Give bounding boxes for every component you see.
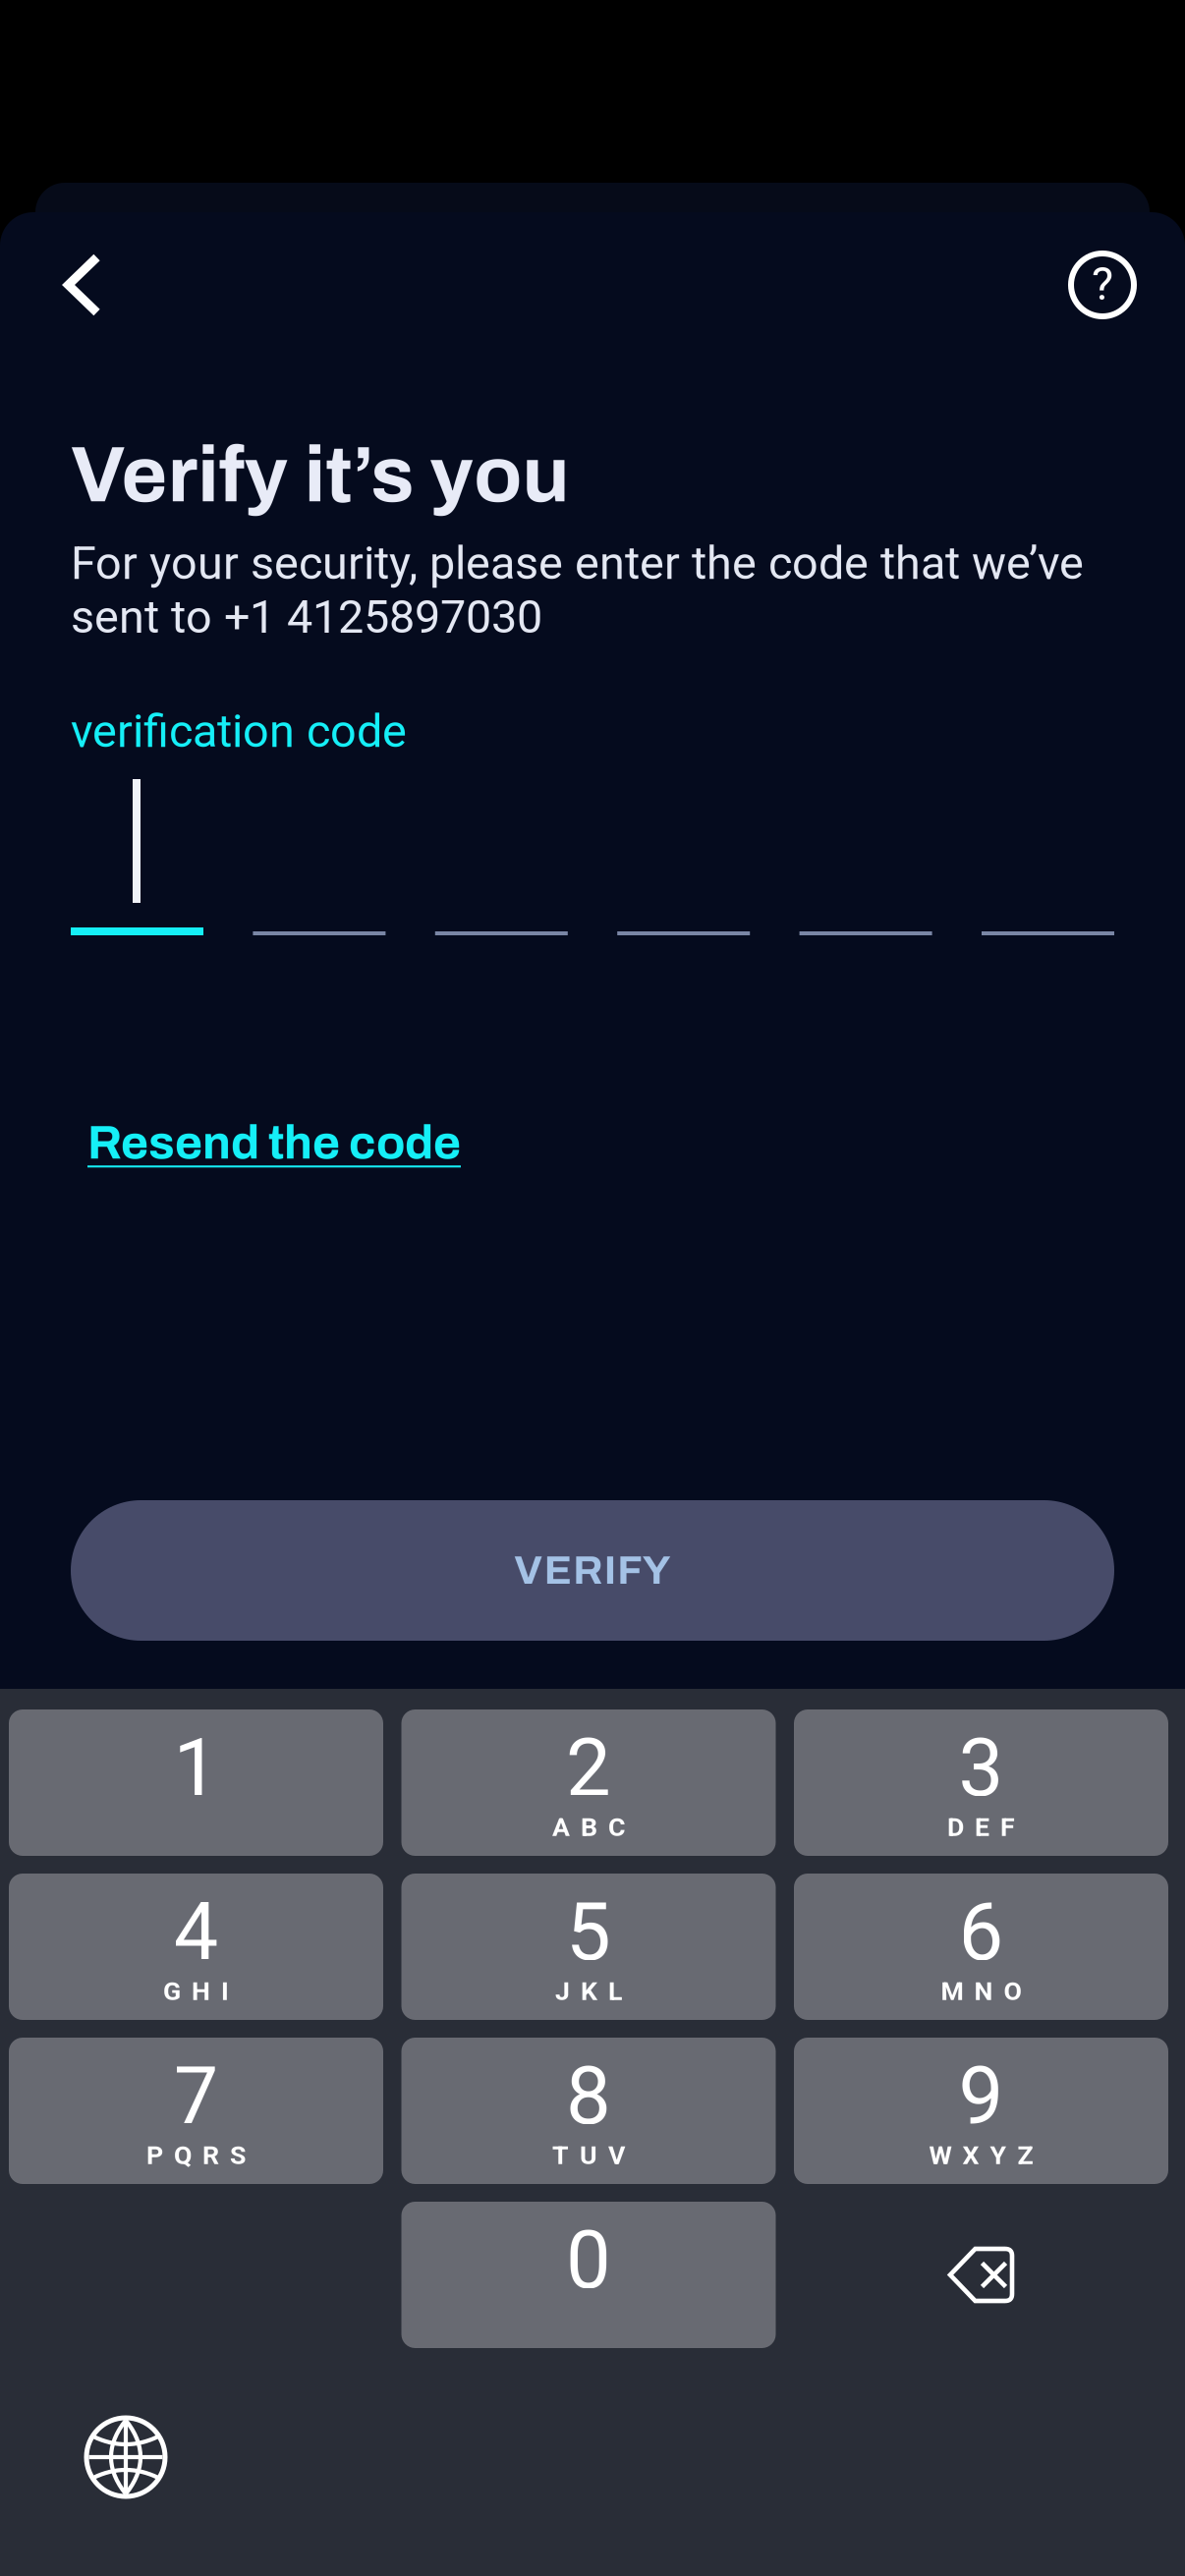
button[interactable]: 5 — [401, 1874, 776, 2020]
staticText: 2 — [566, 1721, 611, 1815]
staticText: 4 — [173, 1885, 219, 1979]
staticText: 7 — [173, 2049, 219, 2143]
staticText: PQRS — [146, 2140, 246, 2171]
button[interactable]: 0 — [401, 2202, 776, 2348]
button[interactable]: Next keyboard — [72, 2403, 180, 2511]
button[interactable]: 7 — [9, 2038, 383, 2184]
button[interactable]: 8 — [401, 2038, 776, 2184]
staticText: ? — [1092, 257, 1113, 311]
staticText: DEF — [947, 1812, 1015, 1842]
staticText: 1 — [173, 1721, 219, 1815]
button[interactable]: 9 — [794, 2038, 1168, 2184]
button[interactable]: 6 — [794, 1874, 1168, 2020]
staticText: 9 — [959, 2049, 1004, 2143]
button[interactable]: Back — [28, 231, 137, 339]
button[interactable]: VERIFY — [71, 1500, 1114, 1641]
staticText: Verify it’s you — [71, 432, 570, 518]
button[interactable]: 3 — [794, 1709, 1168, 1856]
staticText: JKL — [555, 1976, 622, 2006]
staticText: ABC — [552, 1812, 625, 1842]
staticText: Resend the code — [87, 1117, 461, 1168]
button[interactable]: Delete — [794, 2202, 1168, 2348]
staticText: TUV — [552, 2140, 625, 2171]
staticText: GHI — [163, 1976, 229, 2006]
button[interactable]: 2 — [401, 1709, 776, 1856]
staticText: WXYZ — [929, 2140, 1033, 2171]
button[interactable]: Resend the code — [87, 1117, 461, 1168]
staticText: 5 — [566, 1885, 611, 1979]
staticText: 6 — [959, 1885, 1004, 1979]
staticText: VERIFY — [514, 1548, 671, 1593]
staticText: For your security, please enter the code… — [71, 536, 1084, 644]
button[interactable]: Help — [1048, 231, 1157, 339]
staticText: MNO — [941, 1976, 1021, 2006]
staticText: 8 — [566, 2049, 611, 2143]
button[interactable]: 1 — [9, 1709, 383, 1856]
staticText: 0 — [566, 2213, 611, 2307]
button[interactable]: 4 — [9, 1874, 383, 2020]
staticText: 3 — [959, 1721, 1004, 1815]
staticText: verification code — [71, 704, 407, 758]
